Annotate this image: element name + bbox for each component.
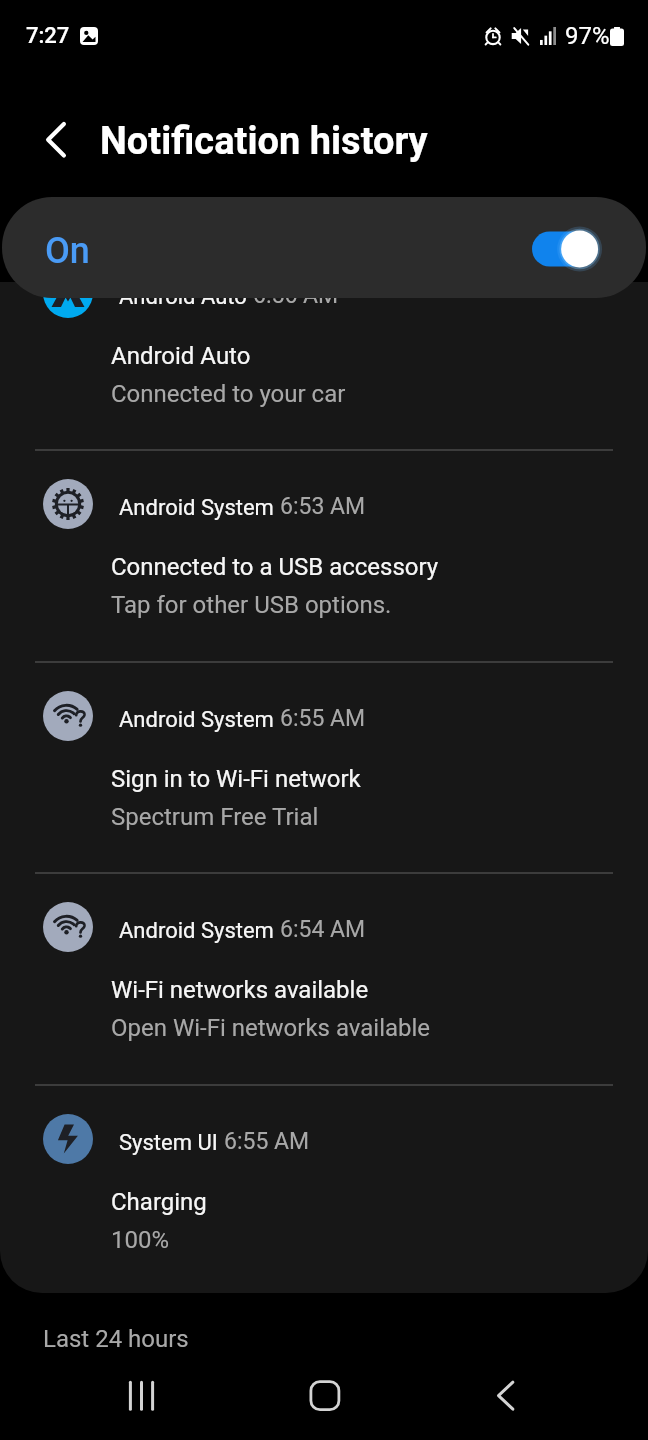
- button[interactable]: Android Auto: [0, 282, 648, 450]
- staticText: 6:55 AM: [280, 705, 366, 732]
- staticText: Last 24 hours: [43, 1325, 189, 1353]
- staticText: Sign in to Wi-Fi network: [111, 765, 361, 793]
- staticText: 6:53 AM: [280, 493, 366, 520]
- staticText: Open Wi-Fi networks available: [111, 1014, 431, 1042]
- button[interactable]: Recents: [110, 1368, 174, 1430]
- staticText: 6:54 AM: [280, 916, 366, 943]
- button[interactable]: Home: [293, 1368, 357, 1430]
- staticText: 100%: [111, 1226, 170, 1254]
- staticText: Android Auto: [111, 342, 251, 370]
- staticText: Tap for other USB options.: [111, 591, 392, 619]
- staticText: On: [45, 230, 90, 272]
- staticText: Wi-Fi networks available: [111, 976, 369, 1004]
- button[interactable]: Android System: [0, 449, 648, 661]
- button[interactable]: Android System: [0, 661, 648, 873]
- button[interactable]: On: [2, 197, 646, 298]
- staticText: Connected to your car: [111, 380, 346, 408]
- staticText: Android System: [119, 918, 274, 944]
- staticText: Android System: [119, 495, 274, 521]
- staticText: Android Auto: [119, 284, 247, 310]
- staticText: 97%: [565, 22, 610, 50]
- staticText: 7:27: [26, 23, 70, 49]
- staticText: Notification history: [100, 119, 428, 164]
- button[interactable]: Back: [24, 111, 80, 167]
- staticText: Charging: [111, 1188, 207, 1216]
- button[interactable]: System UI: [0, 1084, 648, 1293]
- staticText: Spectrum Free Trial: [111, 803, 319, 831]
- button[interactable]: Back: [474, 1368, 538, 1430]
- staticText: Android System: [119, 707, 274, 733]
- staticText: System UI: [119, 1130, 218, 1156]
- staticText: 6:55 AM: [224, 1128, 310, 1155]
- button[interactable]: Android System: [0, 872, 648, 1084]
- staticText: 6:56 AM: [253, 282, 339, 309]
- button[interactable]: Notification history on: [516, 217, 616, 281]
- staticText: Connected to a USB accessory: [111, 553, 439, 581]
